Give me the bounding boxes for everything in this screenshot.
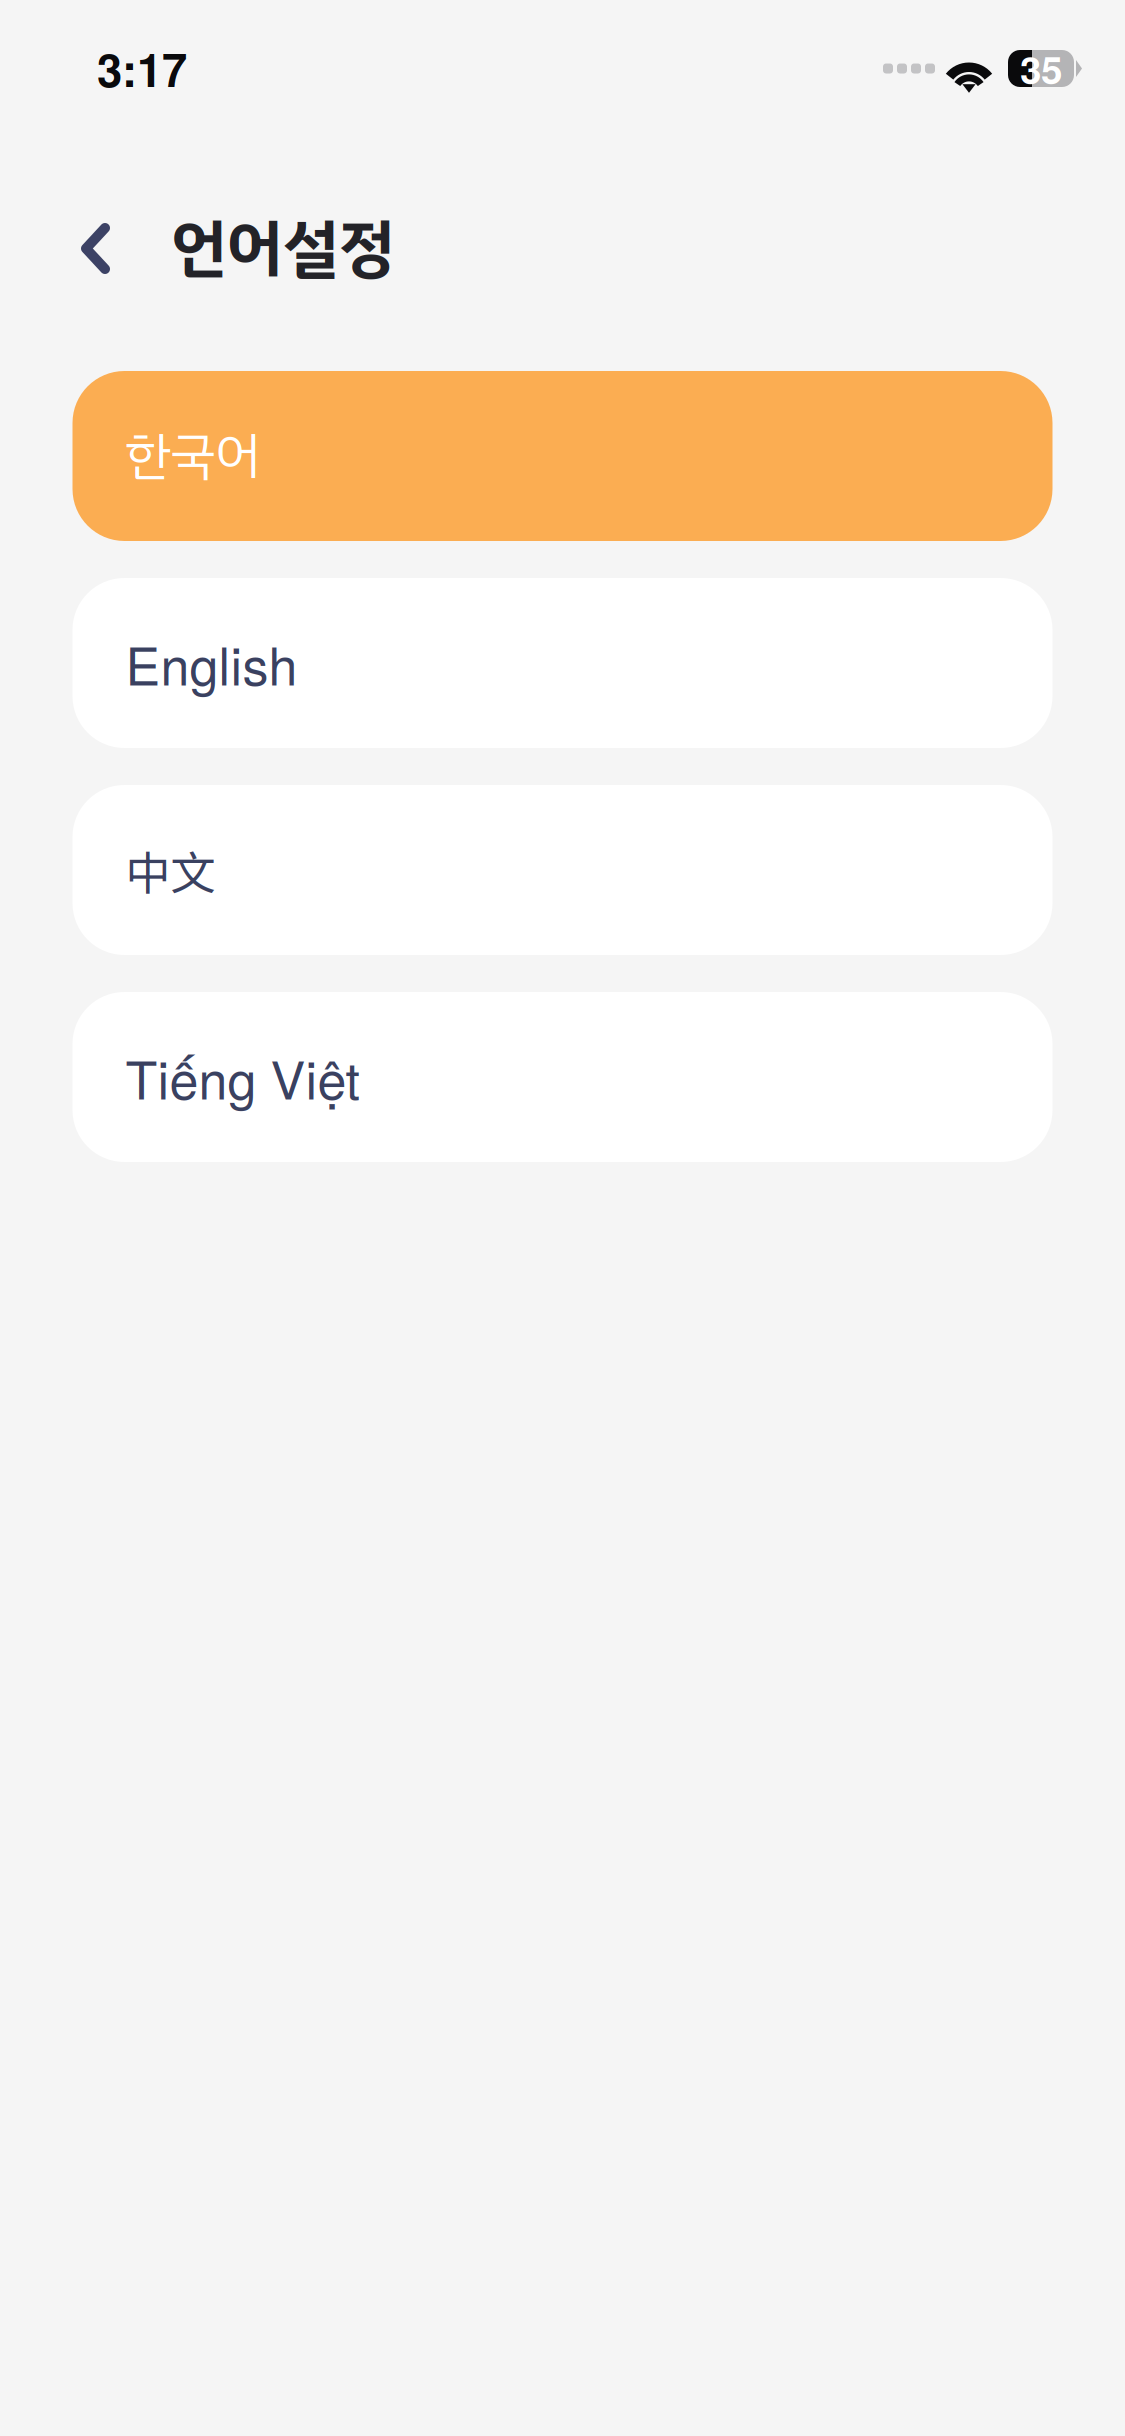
button[interactable]: Tiếng Việt <box>72 992 1052 1162</box>
button[interactable]: 中文 <box>72 785 1052 955</box>
button[interactable]: English <box>72 578 1052 748</box>
staticText: English <box>125 626 297 700</box>
staticText: 한국어 <box>125 418 260 494</box>
staticText: 中文 <box>125 837 215 903</box>
staticText: 언어설정 <box>171 201 395 295</box>
button[interactable]: Back <box>81 201 171 296</box>
staticText: 3:17 <box>97 36 187 101</box>
staticText: 35 <box>1020 41 1062 96</box>
staticText: Tiếng Việt <box>125 1040 359 1114</box>
button[interactable]: 한국어 <box>72 371 1052 541</box>
